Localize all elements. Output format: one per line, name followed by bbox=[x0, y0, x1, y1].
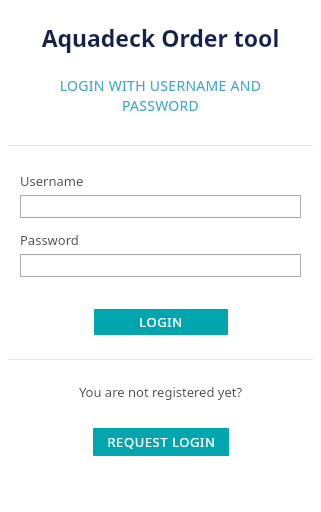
button[interactable] bbox=[20, 254, 301, 277]
staticText: LOGIN bbox=[139, 313, 183, 331]
button[interactable]: LOGIN bbox=[94, 309, 228, 335]
button[interactable] bbox=[20, 195, 301, 218]
staticText: Aquadeck Order tool bbox=[0, 22, 321, 53]
button[interactable]: REQUEST LOGIN bbox=[93, 428, 229, 456]
staticText: LOGIN WITH USERNAME AND PASSWORD bbox=[42, 76, 279, 116]
staticText: You are not registered yet? bbox=[0, 383, 321, 401]
staticText: Username bbox=[20, 172, 84, 190]
staticText: Password bbox=[20, 231, 79, 249]
staticText: REQUEST LOGIN bbox=[107, 433, 216, 451]
